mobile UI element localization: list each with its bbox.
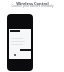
staticText: Wireless Control [16, 1, 49, 6]
staticText: Control your devices remotely [11, 4, 54, 8]
